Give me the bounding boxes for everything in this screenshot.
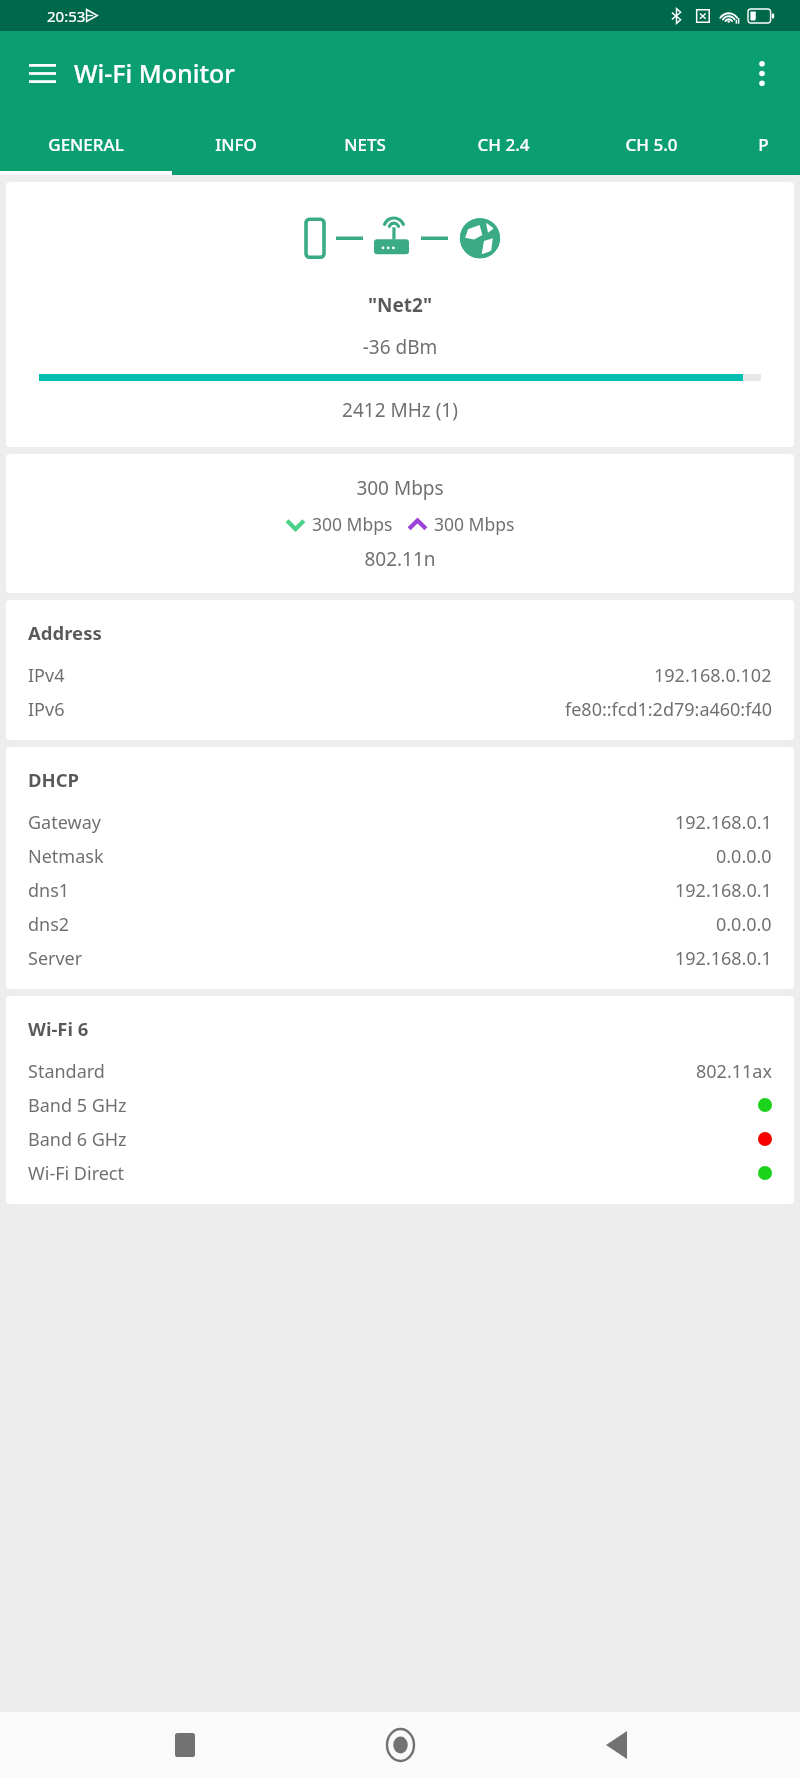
staticText: IPv6 [28,697,65,722]
staticText: Wi-Fi Monitor [74,56,235,90]
button[interactable]: CH 5.0 [576,114,726,175]
staticText: Address [28,620,102,645]
staticText: Gateway [28,810,101,835]
staticText: Netmask [28,844,104,869]
staticText: GENERAL [48,133,124,156]
staticText: 20:53 [47,6,86,26]
staticText: 2412 MHz (1) [6,397,794,423]
button[interactable]: More options [736,47,788,99]
staticText: CH 5.0 [625,133,678,156]
staticText: DHCP [28,767,80,792]
staticText: Wi-Fi Direct [28,1161,124,1186]
button[interactable]: Open navigation drawer [16,47,68,99]
staticText: 192.168.0.1 [675,878,772,903]
button[interactable]: GENERAL [0,114,172,175]
staticText: -36 dBm [6,334,794,360]
button[interactable]: Recent apps [154,1714,216,1776]
staticText: Standard [28,1059,105,1084]
staticText: IPv4 [28,663,65,688]
staticText: 802.11ax [696,1059,772,1084]
staticText: 24 [755,10,766,23]
staticText: "Net2" [6,292,794,318]
staticText: Band 5 GHz [28,1093,127,1118]
staticText: Wi-Fi 6 [28,1016,89,1041]
staticText: 300 Mbps [434,512,515,536]
staticText: P [758,133,769,156]
staticText: fe80::fcd1:2d79:a460:f40 [565,697,772,722]
button[interactable]: INFO [172,114,300,175]
staticText: 300 Mbps [312,512,393,536]
staticText: dns1 [28,878,70,903]
staticText: 192.168.0.1 [675,946,772,971]
staticText: INFO [215,133,257,156]
button[interactable]: CH 2.4 [430,114,576,175]
button[interactable]: NETS [300,114,430,175]
button[interactable]: P [726,114,800,175]
staticText: CH 2.4 [477,133,530,156]
button[interactable]: Home [369,1714,431,1776]
staticText: 0.0.0.0 [716,912,772,937]
staticText: NETS [344,133,386,156]
staticText: 192.168.0.1 [675,810,772,835]
button[interactable]: Back [585,1714,647,1776]
staticText: dns2 [28,912,70,937]
staticText: 192.168.0.102 [654,663,772,688]
staticText: 802.11n [6,546,794,572]
staticText: Band 6 GHz [28,1127,127,1152]
staticText: Server [28,946,83,971]
staticText: 0.0.0.0 [716,844,772,869]
staticText: 300 Mbps [6,475,794,501]
